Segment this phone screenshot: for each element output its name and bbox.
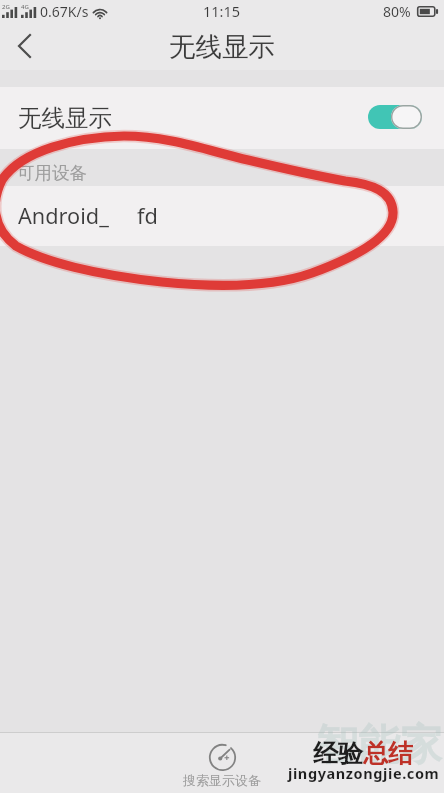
- staticText: 0.67K/s: [40, 2, 89, 21]
- staticText: 4G: [21, 3, 29, 11]
- staticText: Android_ fd: [18, 201, 158, 231]
- staticText: 2G: [2, 3, 10, 11]
- staticText: 智能家: [316, 719, 442, 772]
- button[interactable]: 返回: [0, 22, 48, 70]
- button[interactable]: 无线显示: [0, 87, 444, 149]
- staticText: 无线显示: [169, 30, 275, 63]
- staticText: 无线显示: [18, 103, 112, 133]
- staticText: 11:15: [203, 1, 241, 21]
- staticText: 经验: [313, 738, 363, 769]
- button[interactable]: [368, 105, 422, 129]
- button[interactable]: Android_ fd: [0, 186, 444, 246]
- staticText: 可用设备: [17, 162, 87, 184]
- staticText: 总结: [363, 738, 413, 769]
- button[interactable]: 搜索显示设备: [157, 733, 287, 788]
- staticText: jingyanzongjie.com: [288, 763, 440, 783]
- staticText: 搜索显示设备: [183, 772, 261, 788]
- staticText: 80%: [383, 2, 411, 21]
